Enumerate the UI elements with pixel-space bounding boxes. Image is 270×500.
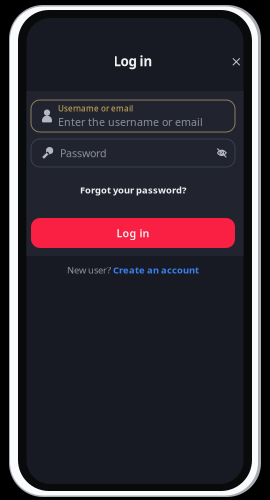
staticText: Create an account [113,264,199,276]
button[interactable]: Create an account [113,264,199,276]
button[interactable]: Log in [31,218,235,248]
staticText: Forgot your password? [80,184,186,196]
button[interactable]: Forgot your password? [31,180,235,200]
staticText: Password [60,146,107,160]
staticText: New user? [67,264,113,276]
button[interactable]: Close [225,51,247,73]
staticText: Username or email [58,103,133,114]
button[interactable]: Password [31,139,235,167]
staticText: Log in [113,52,152,70]
staticText: Enter the username or email [58,115,203,129]
staticText: Log in [116,226,149,240]
